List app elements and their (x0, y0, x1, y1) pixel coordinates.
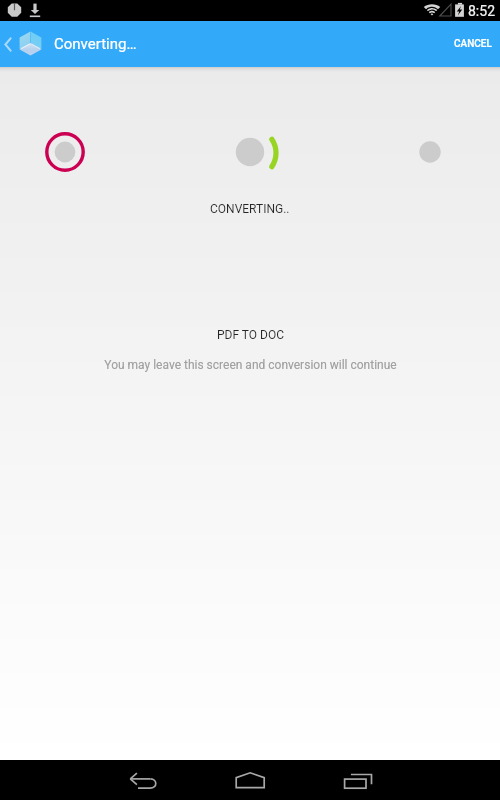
button[interactable]: Recent apps (320, 760, 394, 800)
button[interactable]: Home (213, 760, 287, 800)
button[interactable]: CANCEL (446, 21, 500, 67)
button[interactable]: Back (106, 760, 180, 800)
button[interactable]: Navigate up (0, 21, 15, 67)
staticText: Converting… (54, 35, 137, 53)
staticText: CANCEL (454, 38, 492, 50)
staticText: PDF TO DOC (217, 328, 284, 342)
staticText: CONVERTING.. (210, 202, 290, 216)
staticText: You may leave this screen and conversion… (104, 358, 397, 372)
staticText: 8:52 (468, 3, 495, 19)
